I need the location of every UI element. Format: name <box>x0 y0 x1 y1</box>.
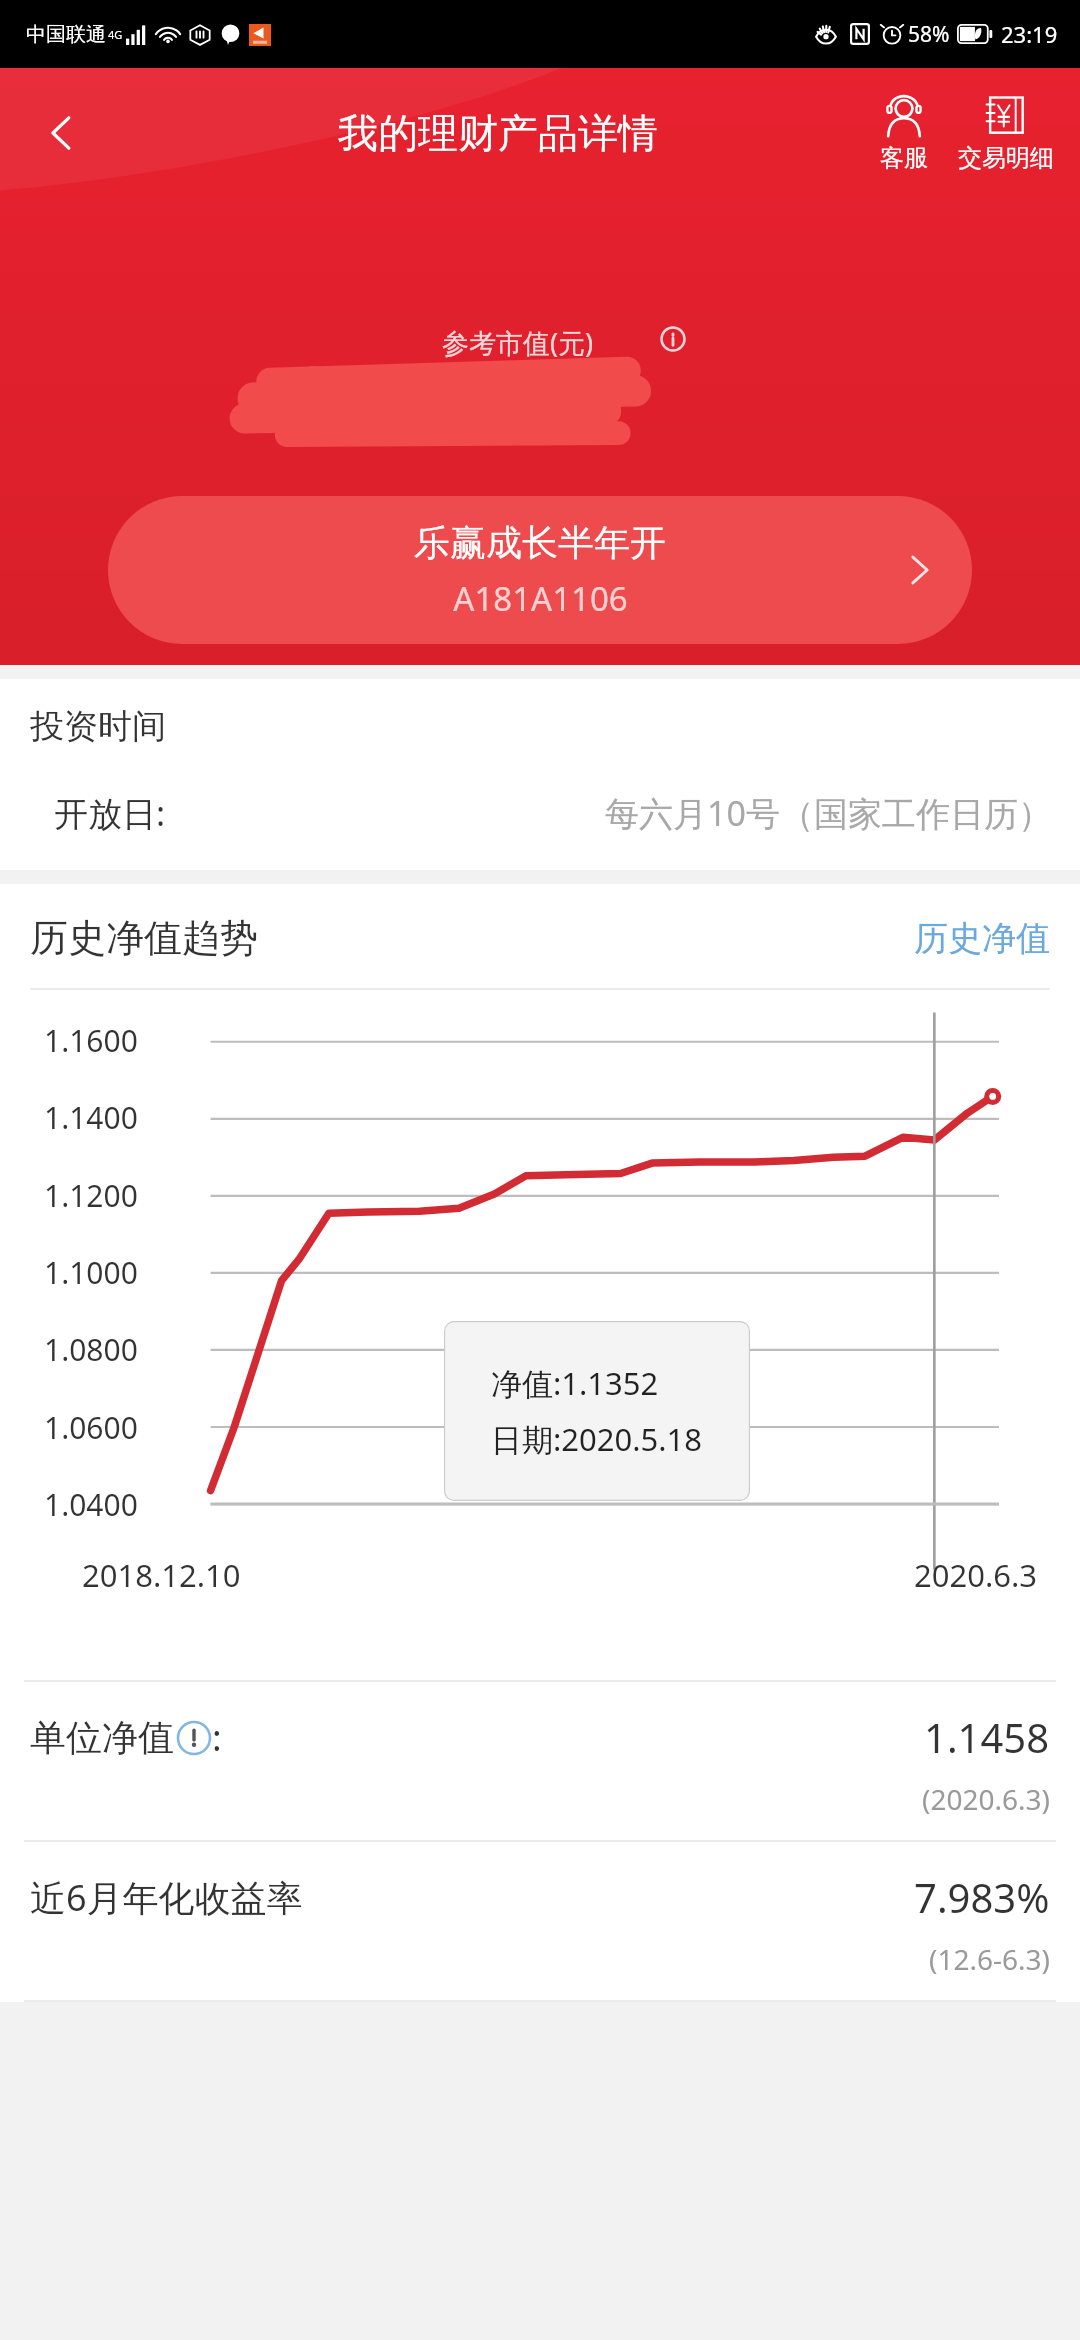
button[interactable]: 客服 <box>872 88 936 179</box>
staticText: 开放日: <box>54 790 166 836</box>
other: 客服 <box>880 94 928 138</box>
staticText: 历史净值趋势 <box>30 914 258 962</box>
staticText: 58% <box>908 20 950 49</box>
staticText: 2020.6.3 <box>914 1554 1038 1596</box>
staticText: (12.6-6.3) <box>929 1940 1050 1978</box>
staticText: 1.1000 <box>44 1252 138 1293</box>
staticText: 1.1600 <box>44 1020 138 1061</box>
button[interactable]: 返回 <box>24 95 100 171</box>
staticText: A181A1106 <box>453 576 628 621</box>
staticText: 7.983% <box>914 1870 1050 1924</box>
staticText: 历史净值 <box>914 917 1050 960</box>
staticText: 1.1458 <box>924 1710 1050 1764</box>
button[interactable]: 单位净值 <box>0 1682 1080 1840</box>
staticText: 1.1400 <box>44 1097 138 1138</box>
button[interactable]: 历史净值趋势 <box>30 914 1050 962</box>
staticText: 客服 <box>880 143 928 173</box>
button[interactable]: 乐赢成长半年开 <box>108 496 972 644</box>
staticText: : <box>212 1713 222 1762</box>
staticText: 23:19 <box>1001 19 1058 49</box>
staticText: 我的理财产品详情 <box>338 108 658 158</box>
staticText: 近6月年化收益率 <box>30 1873 303 1922</box>
staticText: 2018.12.10 <box>82 1554 241 1596</box>
staticText: 1.0800 <box>44 1329 138 1370</box>
button[interactable]: 近6月年化收益率 <box>0 1842 1080 2000</box>
staticText: 中国联通 <box>26 22 106 47</box>
staticText: 1.1200 <box>44 1175 138 1216</box>
staticText: 日期:2020.5.18 <box>491 1418 703 1460</box>
staticText: (2020.6.3) <box>922 1780 1050 1818</box>
button[interactable]: 交易明细 <box>950 88 1062 179</box>
other: 交易明细 <box>984 94 1028 138</box>
staticText: 4G <box>108 27 123 42</box>
staticText: 乐赢成长半年开 <box>414 520 666 565</box>
staticText: 参考市值(元) <box>442 324 594 361</box>
staticText: 单位净值 <box>30 1715 174 1760</box>
staticText: 每六月10号（国家工作日历） <box>605 790 1052 836</box>
staticText: 投资时间 <box>30 705 166 748</box>
staticText: 1.0600 <box>44 1407 138 1448</box>
staticText: 交易明细 <box>958 143 1054 173</box>
staticText: 1.0400 <box>44 1484 138 1525</box>
staticText: 净值:1.1352 <box>491 1362 659 1404</box>
